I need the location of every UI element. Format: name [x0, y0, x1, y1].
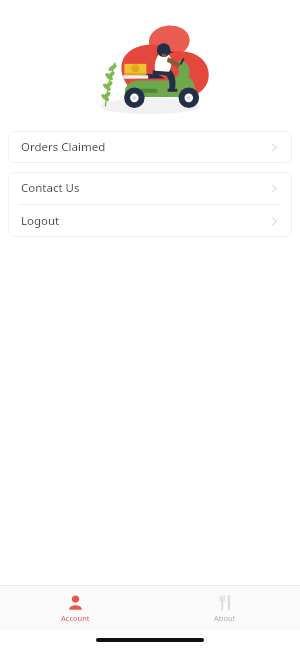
staticText: Orders Claimed	[21, 139, 106, 155]
staticText: About	[214, 613, 236, 623]
staticText: Logout	[21, 213, 60, 229]
button[interactable]: About	[150, 594, 300, 623]
button[interactable]: Logout	[8, 205, 292, 237]
staticText: Account	[61, 613, 90, 623]
staticText: Contact Us	[21, 180, 80, 196]
button[interactable]: Account	[0, 594, 150, 623]
button[interactable]: Contact Us	[8, 172, 292, 204]
button[interactable]: Orders Claimed	[8, 131, 292, 163]
